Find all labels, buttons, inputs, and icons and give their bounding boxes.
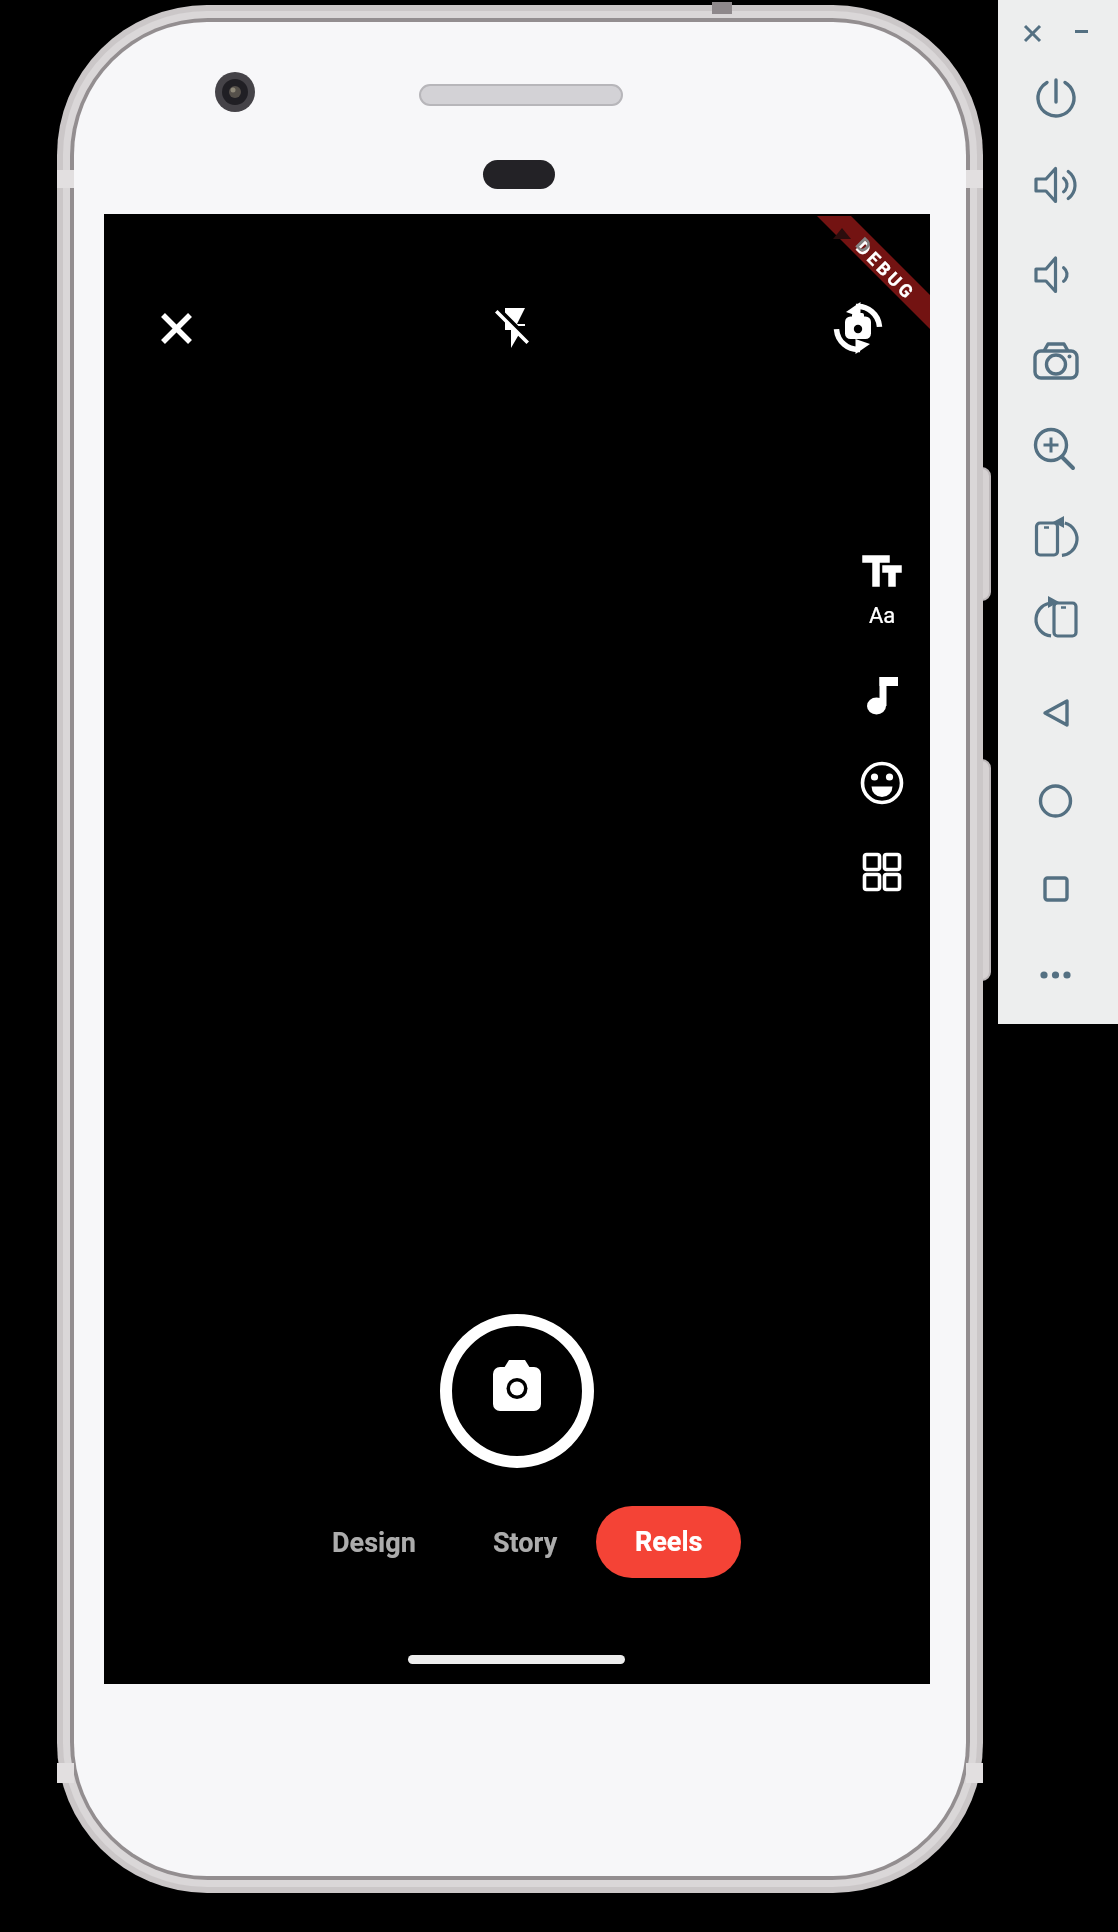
button[interactable]	[852, 842, 912, 902]
button[interactable]: Aa	[858, 600, 906, 632]
button[interactable]	[1026, 945, 1086, 1005]
button[interactable]	[1026, 245, 1086, 305]
button[interactable]	[1026, 155, 1086, 215]
button[interactable]	[1026, 415, 1086, 475]
button[interactable]	[1016, 17, 1048, 49]
staticText: D	[852, 233, 876, 257]
staticText: Reels	[635, 1526, 703, 1558]
button[interactable]	[485, 298, 545, 358]
button[interactable]: Design	[304, 1515, 444, 1571]
staticText: Story	[493, 1527, 558, 1559]
button[interactable]	[1026, 334, 1086, 394]
button[interactable]	[1026, 590, 1086, 650]
button[interactable]: Story	[455, 1515, 596, 1571]
button[interactable]	[828, 298, 888, 358]
button[interactable]	[1065, 15, 1097, 47]
button[interactable]	[1026, 509, 1086, 569]
button[interactable]	[852, 542, 912, 596]
staticText: Design	[332, 1527, 416, 1559]
button[interactable]	[852, 753, 912, 813]
button[interactable]	[1026, 68, 1086, 128]
staticText: Aa	[869, 603, 896, 629]
button[interactable]	[437, 1311, 597, 1471]
button[interactable]	[852, 666, 912, 726]
staticText: DEBUG	[852, 237, 920, 305]
button[interactable]	[1026, 859, 1086, 919]
button[interactable]	[1026, 683, 1086, 743]
button[interactable]	[146, 298, 206, 358]
button[interactable]	[1026, 771, 1086, 831]
button[interactable]: Reels	[596, 1506, 741, 1578]
